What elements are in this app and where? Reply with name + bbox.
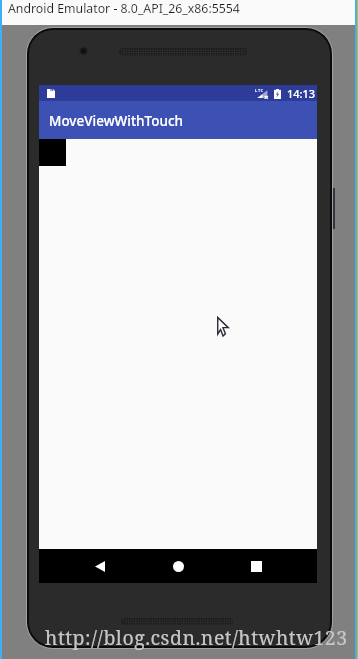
- staticText: http://blog.csdn.net/htwhtw123: [45, 624, 348, 651]
- button[interactable]: Home: [139, 549, 217, 583]
- staticText: 14:13: [287, 86, 316, 101]
- staticText: Android Emulator - 8.0_API_26_x86:5554: [8, 0, 240, 17]
- button[interactable]: Recent apps: [217, 549, 295, 583]
- button[interactable]: Back: [61, 549, 139, 583]
- staticText: MoveViewWithTouch: [49, 112, 183, 130]
- button[interactable]: MoveViewWithTouch: [39, 101, 317, 139]
